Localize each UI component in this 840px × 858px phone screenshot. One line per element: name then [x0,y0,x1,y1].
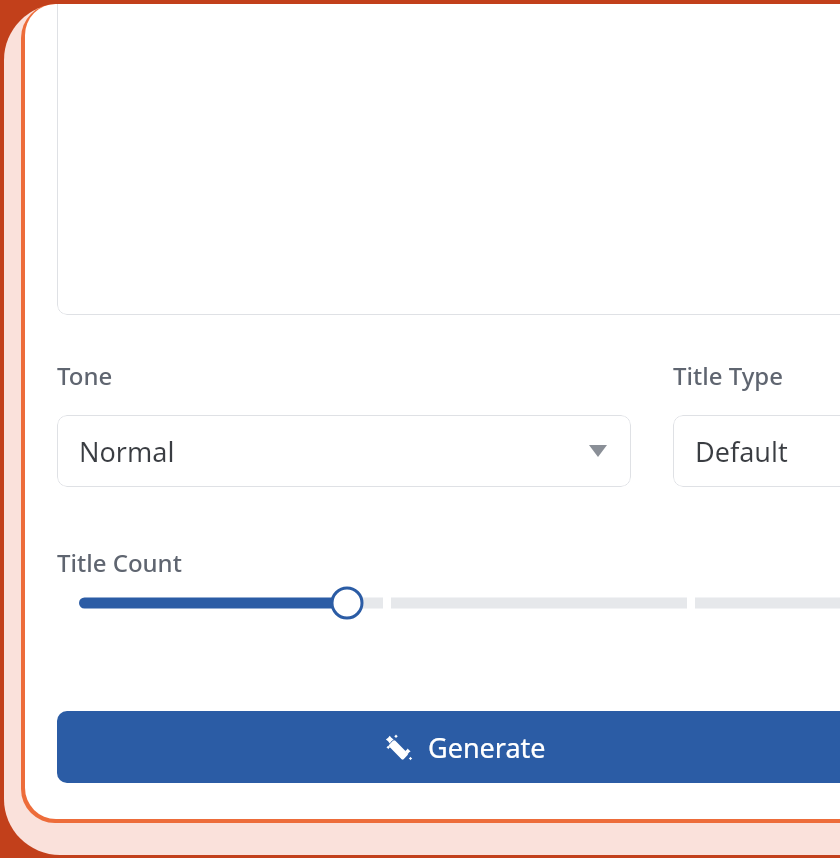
staticText: Title Count [57,546,182,579]
button[interactable]: Title Count slider [57,579,840,627]
button[interactable]: Generate [57,711,840,783]
staticText: Tone [57,359,113,392]
staticText: Normal [79,433,175,470]
staticText: Title Type [673,359,783,392]
button[interactable]: Default [673,415,840,487]
button[interactable]: Normal [57,415,631,487]
staticText: Default [695,433,788,470]
staticText: Generate [428,729,546,766]
